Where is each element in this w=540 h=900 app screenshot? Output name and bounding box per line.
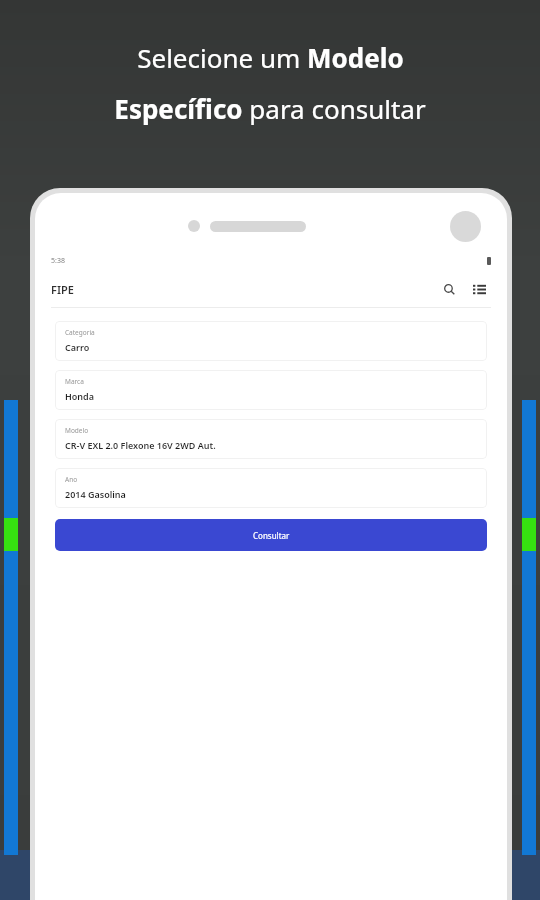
button[interactable]: Ano (55, 468, 487, 508)
staticText: Categoria (65, 328, 95, 337)
staticText: Selecione um Modelo (137, 40, 404, 75)
staticText: Ano (65, 475, 78, 484)
staticText: 5:38 (51, 256, 65, 266)
button[interactable]: Categoria (55, 321, 487, 361)
button[interactable]: Modelo (55, 419, 487, 459)
button[interactable]: Search (437, 277, 461, 301)
button[interactable]: Marca (55, 370, 487, 410)
button[interactable]: Consultar (55, 519, 487, 551)
staticText: Carro (65, 341, 90, 353)
staticText: Consultar (253, 530, 290, 541)
button[interactable]: List view (467, 277, 491, 301)
staticText: Honda (65, 390, 94, 402)
staticText: Marca (65, 377, 84, 386)
staticText: FIPE (51, 282, 74, 297)
staticText: CR-V EXL 2.0 Flexone 16V 2WD Aut. (65, 439, 216, 451)
staticText: 2014 Gasolina (65, 488, 126, 500)
staticText: Modelo (65, 426, 89, 435)
staticText: Específico para consultar (114, 91, 426, 126)
